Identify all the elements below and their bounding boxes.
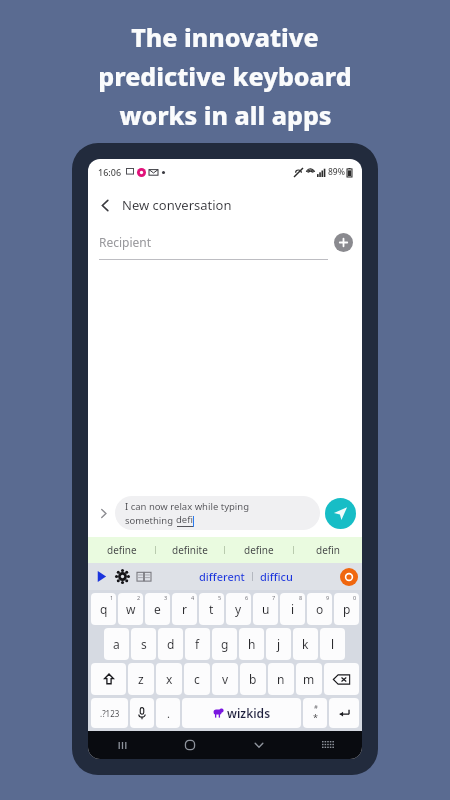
staticText: l	[331, 636, 335, 652]
button[interactable]: g	[212, 628, 237, 660]
button[interactable]: t	[199, 593, 224, 625]
button[interactable]: defin	[294, 537, 362, 563]
button[interactable]: k	[293, 628, 318, 660]
staticText: defi	[176, 513, 193, 526]
staticText: s	[141, 636, 147, 652]
staticText: g	[221, 636, 229, 652]
button[interactable]: define	[225, 537, 293, 563]
button[interactable]: Shift	[91, 663, 126, 695]
staticText: define	[107, 543, 137, 557]
button[interactable]: Expand	[94, 504, 112, 522]
button[interactable]: j	[266, 628, 291, 660]
button[interactable]: i	[280, 593, 305, 625]
button[interactable]: #	[303, 698, 327, 728]
staticText: b	[249, 671, 257, 687]
staticText: c	[194, 671, 200, 687]
button[interactable]: d	[158, 628, 183, 660]
button[interactable]: v	[212, 663, 238, 695]
button[interactable]: s	[131, 628, 156, 660]
button[interactable]: x	[156, 663, 182, 695]
button[interactable]: .	[156, 698, 180, 728]
staticText: x	[166, 671, 173, 687]
button[interactable]: u	[253, 593, 278, 625]
button[interactable]: Backspace	[324, 663, 359, 695]
staticText: q	[100, 601, 108, 617]
staticText: defin	[316, 543, 340, 557]
staticText: 3	[164, 594, 168, 601]
staticText: 7	[272, 594, 276, 601]
staticText: .?123	[100, 708, 120, 719]
button[interactable]: Keyboard switch	[293, 731, 362, 759]
staticText: 89%	[328, 166, 345, 178]
button[interactable]: z	[128, 663, 154, 695]
staticText: 4	[191, 594, 195, 601]
staticText: j	[277, 636, 281, 652]
button[interactable]: Recent apps	[88, 731, 156, 759]
staticText: p	[343, 601, 351, 617]
staticText: I can now relax while typing	[125, 500, 250, 513]
staticText: u	[262, 601, 270, 617]
button[interactable]: y	[226, 593, 251, 625]
staticText: Recipient	[99, 234, 152, 250]
button[interactable]: Enter	[329, 698, 359, 728]
button[interactable]: h	[239, 628, 264, 660]
button[interactable]: define	[88, 537, 155, 563]
button[interactable]: wizkids	[182, 698, 301, 728]
staticText: o	[316, 601, 324, 617]
button[interactable]: Play	[92, 567, 111, 586]
button[interactable]: e	[145, 593, 170, 625]
button[interactable]: f	[185, 628, 210, 660]
staticText: definite	[172, 543, 208, 557]
button[interactable]: n	[268, 663, 294, 695]
button[interactable]: different	[199, 569, 245, 584]
button[interactable]: Wizkids	[340, 568, 358, 586]
staticText: 5	[218, 594, 222, 601]
button[interactable]: difficu	[260, 569, 293, 584]
staticText: m	[303, 671, 315, 687]
staticText: k	[302, 636, 309, 652]
staticText: .	[167, 706, 170, 721]
button[interactable]: definite	[156, 537, 224, 563]
staticText: 16:06	[98, 166, 122, 178]
staticText: 0	[353, 594, 357, 601]
button[interactable]: I can now relax while typing	[115, 496, 320, 530]
button[interactable]: Add recipient	[334, 233, 353, 252]
staticText: f	[195, 636, 200, 652]
staticText: i	[291, 601, 295, 617]
staticText: t	[209, 601, 214, 617]
staticText: #	[314, 703, 318, 711]
staticText: wizkids	[227, 705, 271, 721]
button[interactable]: c	[184, 663, 210, 695]
staticText: 8	[299, 594, 303, 601]
button[interactable]: w	[118, 593, 143, 625]
staticText: predictive keyboard	[98, 59, 352, 93]
button[interactable]: p	[334, 593, 359, 625]
staticText: something	[125, 514, 176, 527]
button[interactable]: Hide keyboard	[224, 731, 293, 759]
button[interactable]: b	[240, 663, 266, 695]
staticText: e	[154, 601, 161, 617]
button[interactable]: Settings	[113, 567, 132, 586]
button[interactable]: .?123	[91, 698, 128, 728]
button[interactable]: q	[91, 593, 116, 625]
button[interactable]: o	[307, 593, 332, 625]
button[interactable]: l	[320, 628, 345, 660]
staticText: The innovative	[131, 20, 319, 54]
button[interactable]: Voice input	[130, 698, 154, 728]
button[interactable]: r	[172, 593, 197, 625]
button[interactable]: Back	[88, 188, 122, 222]
staticText: n	[277, 671, 285, 687]
staticText: r	[182, 601, 187, 617]
staticText: 1	[110, 594, 114, 601]
button[interactable]: Home	[156, 731, 224, 759]
button[interactable]: a	[104, 628, 129, 660]
button[interactable]: Dictionary	[134, 567, 153, 586]
button[interactable]: m	[296, 663, 322, 695]
staticText: v	[222, 671, 229, 687]
staticText: w	[126, 601, 136, 617]
staticText: New conversation	[122, 196, 232, 214]
staticText: h	[248, 636, 256, 652]
button[interactable]: Send	[325, 498, 356, 529]
staticText: a	[113, 636, 120, 652]
staticText: 6	[245, 594, 249, 601]
